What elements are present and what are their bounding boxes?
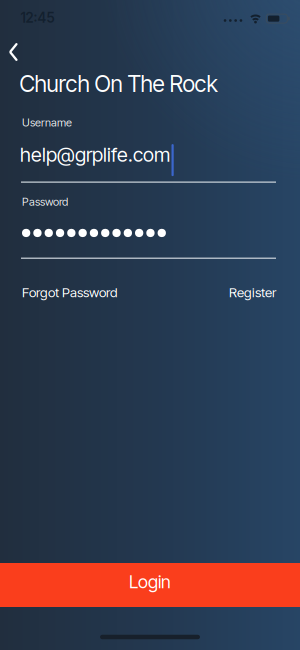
button[interactable]: Forgot Password (22, 284, 117, 300)
staticText: Password (22, 195, 68, 208)
staticText: Username (22, 116, 72, 129)
staticText: help@grplife.com (20, 143, 170, 167)
staticText: Forgot Password (22, 284, 117, 300)
staticText: Login (129, 571, 171, 593)
button[interactable]: Login (0, 563, 300, 607)
button[interactable] (8, 43, 18, 61)
staticText: 12:45 (20, 9, 54, 26)
button[interactable]: Register (229, 284, 276, 300)
staticText: Church On The Rock (19, 70, 217, 97)
staticText: Register (229, 284, 276, 300)
